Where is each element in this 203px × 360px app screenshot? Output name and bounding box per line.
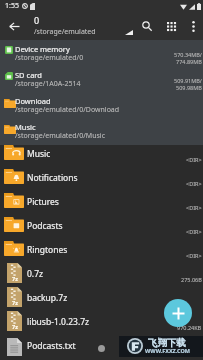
- staticText: SD card: [15, 70, 42, 80]
- button[interactable]: Music: [0, 118, 203, 144]
- staticText: libusb-1.0.23.7z: [27, 316, 90, 328]
- button[interactable]: Device memory: [0, 40, 203, 66]
- staticText: /storage/emulated/0/Music: [15, 131, 105, 141]
- staticText: Ringtones: [27, 244, 68, 256]
- staticText: 7z: [12, 323, 18, 330]
- button[interactable]: Download: [0, 92, 203, 118]
- staticText: Music: [27, 148, 51, 160]
- button[interactable]: Search: [135, 14, 159, 38]
- button[interactable]: 7z: [0, 265, 203, 289]
- button[interactable]: Ringtones: [0, 241, 203, 265]
- staticText: 0.7z: [27, 268, 43, 280]
- staticText: <DIR>: [186, 156, 202, 163]
- staticText: 774.89MB: [176, 58, 202, 65]
- staticText: 7z: [12, 299, 18, 306]
- button[interactable]: View mode: [159, 14, 183, 38]
- staticText: /storage/emulated: [34, 27, 96, 37]
- button[interactable]: Back: [0, 12, 28, 40]
- button[interactable]: 7z: [0, 313, 203, 337]
- staticText: 275.06B: [181, 276, 202, 283]
- staticText: <DIR>: [186, 228, 202, 235]
- staticText: 970.24KB: [177, 324, 202, 331]
- button[interactable]: SD card: [0, 66, 203, 92]
- button[interactable]: Notifications: [0, 169, 203, 193]
- button[interactable]: 7z: [0, 289, 203, 313]
- staticText: 509.91MB/: [174, 77, 202, 84]
- button[interactable]: More options: [183, 16, 203, 36]
- staticText: /storage/1A0A-2514: [15, 79, 81, 89]
- button[interactable]: New: [164, 299, 192, 327]
- staticText: backup.7z: [27, 292, 68, 304]
- staticText: WWW.FXXZ.COM: [145, 347, 191, 354]
- staticText: Music: [15, 122, 36, 132]
- staticText: Podcasts.txt: [27, 340, 76, 352]
- staticText: <DIR>: [186, 252, 202, 259]
- button[interactable]: Podcasts: [0, 217, 203, 241]
- staticText: 509.98MB: [176, 84, 202, 91]
- staticText: <DIR>: [186, 204, 202, 211]
- staticText: /storage/emulated/0/Download: [15, 105, 120, 115]
- staticText: 1:55: [5, 1, 19, 11]
- button[interactable]: Pictures: [0, 193, 203, 217]
- staticText: Download: [15, 96, 51, 106]
- staticText: 7z: [12, 275, 18, 282]
- staticText: <DIR>: [186, 180, 202, 187]
- staticText: 570.34MB/: [174, 51, 202, 58]
- staticText: Notifications: [27, 172, 78, 184]
- staticText: Podcasts: [27, 220, 63, 232]
- staticText: /storage/emulated/0: [15, 53, 84, 63]
- staticText: 0: [34, 14, 40, 26]
- button[interactable]: Music: [0, 145, 203, 169]
- staticText: Pictures: [27, 196, 59, 208]
- staticText: 飞翔下载: [148, 337, 186, 349]
- staticText: Device memory: [15, 44, 70, 54]
- button[interactable]: Podcasts.txt: [0, 337, 203, 360]
